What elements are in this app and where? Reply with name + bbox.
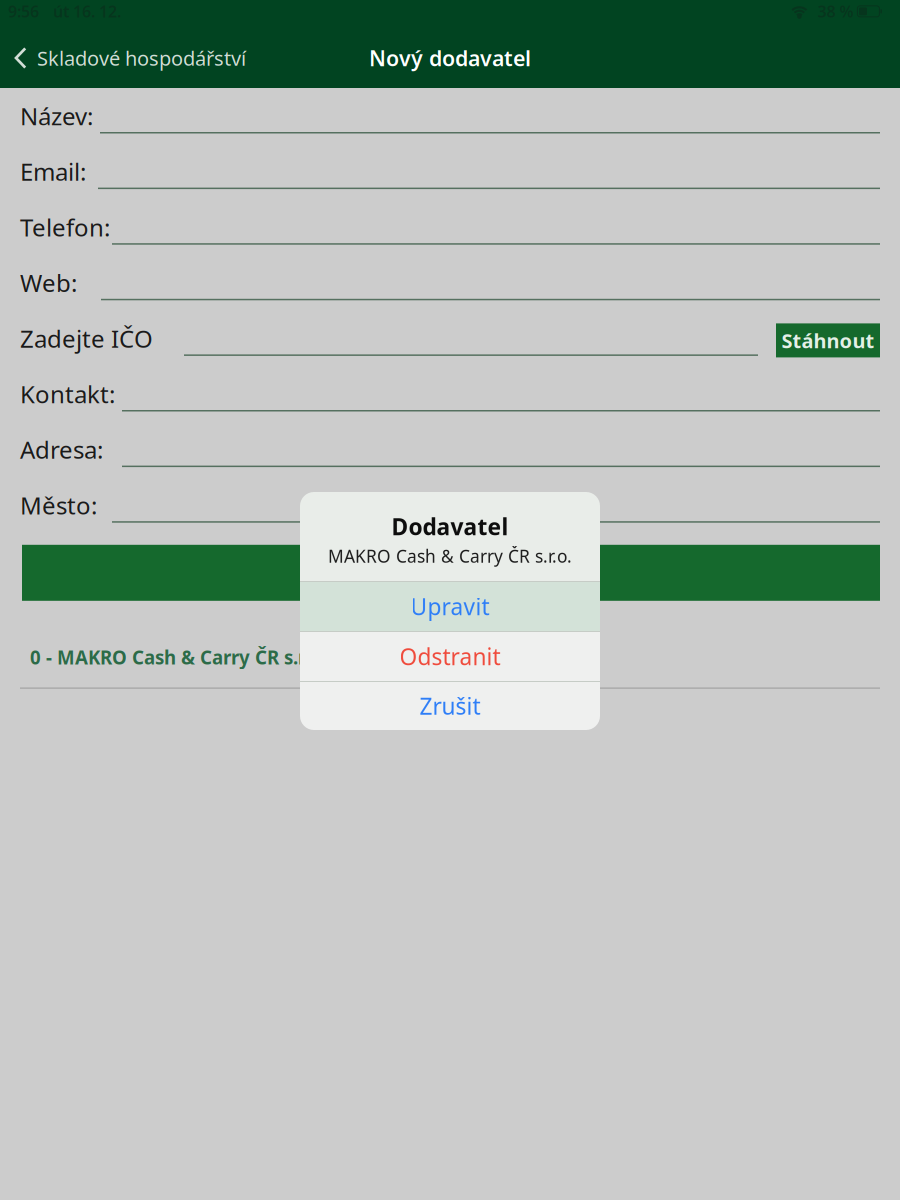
button[interactable]: Zrušit <box>300 682 600 730</box>
button[interactable]: Upravit <box>300 582 600 631</box>
button[interactable]: Web: <box>20 267 880 322</box>
staticText: Odstranit <box>399 641 500 671</box>
staticText: Název: <box>20 100 93 132</box>
button[interactable]: Název: <box>20 100 880 156</box>
staticText: Zadejte IČO <box>20 322 153 354</box>
button[interactable]: Stáhnout <box>776 323 880 357</box>
staticText: Telefon: <box>20 211 110 243</box>
staticText: Adresa: <box>20 434 103 465</box>
staticText: MAKRO Cash & Carry ČR s.r.o. <box>328 544 572 567</box>
button[interactable]: 0 - MAKRO Cash & Carry ČR s.r.o. <box>0 601 900 689</box>
staticText: út 16. 12. <box>53 1 121 22</box>
staticText: Dodavatel <box>391 511 508 541</box>
button[interactable]: Město: <box>20 489 880 545</box>
staticText: Upravit <box>410 591 489 621</box>
button[interactable]: Skladové hospodářství <box>0 36 246 80</box>
staticText: Město: <box>20 489 97 521</box>
button[interactable]: Email: <box>20 156 880 211</box>
staticText: Stáhnout <box>781 327 874 354</box>
staticText: Nový dodavatel <box>369 44 531 72</box>
button[interactable]: Adresa: <box>20 434 880 489</box>
staticText: Email: <box>20 156 86 187</box>
button[interactable]: Odstranit <box>300 632 600 681</box>
staticText: Skladové hospodářství <box>37 45 246 71</box>
staticText: 9:56 <box>8 1 39 22</box>
staticText: 0 - MAKRO Cash & Carry ČR s.r.o. <box>30 645 325 670</box>
staticText: Web: <box>20 267 77 299</box>
staticText: Kontakt: <box>20 378 115 410</box>
button[interactable]: Kontakt: <box>20 378 880 434</box>
button[interactable]: Zadejte IČO <box>20 322 880 378</box>
button[interactable]: Telefon: <box>20 211 880 267</box>
button[interactable]: Uložit dodavatele <box>22 545 880 601</box>
staticText: 38 % <box>817 1 853 22</box>
staticText: Zrušit <box>419 691 480 721</box>
